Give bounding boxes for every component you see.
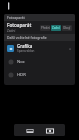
- button[interactable]: HDR: [4, 68, 75, 81]
- button[interactable]: More options: [67, 46, 72, 51]
- button[interactable]: Fotoaparát: [4, 21, 75, 34]
- button[interactable]: Obojí: [62, 25, 72, 31]
- button[interactable]: Camera: [44, 125, 55, 136]
- button[interactable]: Back: [3, 0, 14, 11]
- button[interactable]: Grafika: [4, 41, 75, 55]
- button[interactable]: Noc: [4, 55, 75, 68]
- staticText: Další volitelné fotografie: [7, 35, 47, 40]
- staticText: Grafika: [17, 43, 33, 49]
- button[interactable]: Přední: [40, 25, 50, 31]
- staticText: HDR: [17, 72, 26, 78]
- staticText: Fotoaparát: [7, 22, 32, 28]
- staticText: Zadní: [7, 29, 16, 33]
- staticText: Zadní: [52, 26, 60, 30]
- staticText: Fotoaparát: [7, 15, 25, 20]
- button[interactable]: Video: [24, 125, 35, 136]
- staticText: Obojí: [63, 26, 71, 30]
- staticText: Sparovaldan: [17, 49, 35, 53]
- button[interactable]: Zadní: [51, 25, 61, 31]
- staticText: Přední: [41, 26, 50, 30]
- staticText: Noc: [17, 59, 25, 65]
